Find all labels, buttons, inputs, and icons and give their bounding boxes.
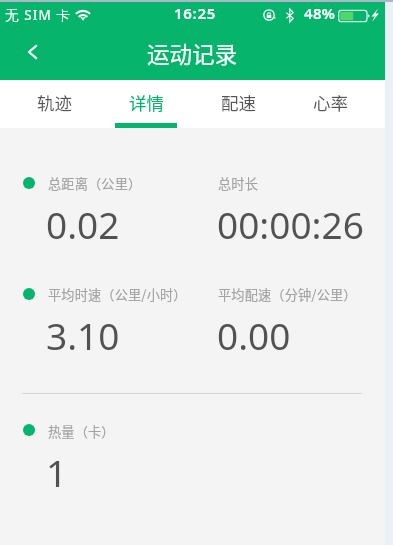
staticText: 运动记录 (147, 37, 238, 70)
staticText: 无 SIM 卡 (5, 6, 71, 24)
staticText: 平均配速（分钟/公里） (218, 285, 357, 304)
staticText: 00:00:26 (217, 199, 364, 249)
button[interactable]: 配速 (192, 80, 284, 128)
staticText: 3.10 (46, 310, 120, 360)
staticText: 0.00 (217, 310, 291, 360)
button[interactable]: 轨迹 (8, 80, 100, 128)
staticText: 16:25 (174, 3, 216, 23)
staticText: 平均时速（公里/小时） (48, 285, 187, 304)
staticText: 配速 (221, 90, 256, 115)
staticText: 48% (304, 3, 336, 23)
staticText: 轨迹 (37, 90, 72, 115)
staticText: 1 (46, 447, 68, 497)
button[interactable]: 详情 (100, 80, 192, 128)
staticText: 总时长 (218, 174, 259, 193)
staticText: 详情 (129, 90, 164, 115)
staticText: 热量（卡） (48, 422, 115, 441)
staticText: 总距离（公里） (48, 174, 142, 193)
staticText: 0.02 (46, 199, 120, 249)
button[interactable]: Back (10, 32, 54, 72)
staticText: 心率 (313, 90, 348, 115)
button[interactable]: 心率 (284, 80, 376, 128)
